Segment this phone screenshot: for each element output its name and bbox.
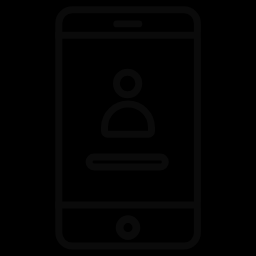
other: Mobile login screen illustration [0,0,256,256]
